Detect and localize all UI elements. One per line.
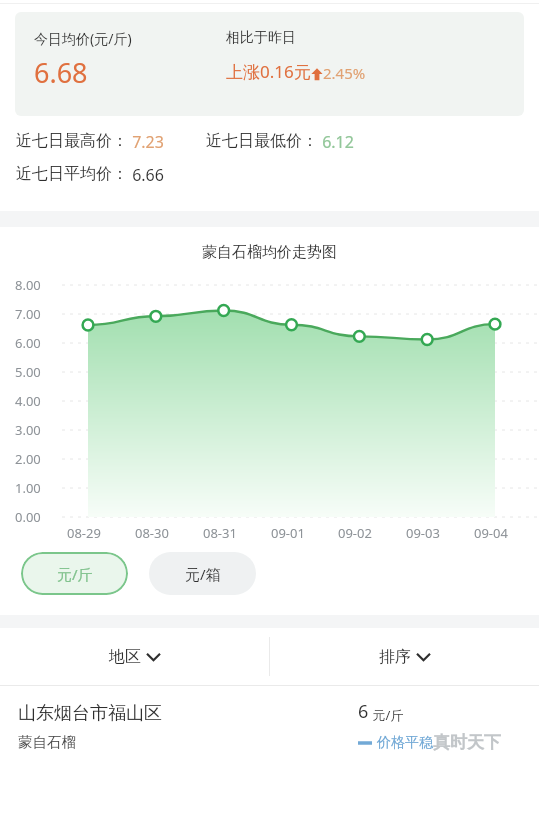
staticText: 元/斤 <box>369 706 404 724</box>
staticText: 今日均价(元/斤) <box>34 29 132 48</box>
staticText: 2.45% <box>323 63 366 83</box>
staticText: 上涨0.16元 <box>226 60 311 83</box>
staticText: 5.00 <box>15 363 41 381</box>
staticText: 3.00 <box>15 421 41 439</box>
button[interactable]: 排序 <box>270 628 539 685</box>
staticText: 元/箱 <box>185 564 221 584</box>
button[interactable]: 今日均价(元/斤) <box>15 12 524 116</box>
staticText: 09-03 <box>406 524 440 542</box>
button[interactable]: 元/箱 <box>149 552 256 595</box>
button[interactable]: 地区 <box>0 628 269 685</box>
staticText: 08-30 <box>135 524 169 542</box>
staticText: 相比于昨日 <box>226 29 296 47</box>
staticText: 6 <box>358 699 369 724</box>
staticText: 近七日平均价： <box>16 164 128 184</box>
staticText: 近七日最高价： <box>16 131 128 151</box>
staticText: 7.23 <box>128 131 164 153</box>
staticText: 7.00 <box>15 305 41 323</box>
staticText: 蒙自石榴 <box>18 733 76 751</box>
staticText: 09-01 <box>271 524 305 542</box>
staticText: 地区 <box>109 647 141 667</box>
button[interactable]: 山东烟台市福山区 <box>0 686 539 766</box>
staticText: 排序 <box>379 647 411 667</box>
staticText: 08-29 <box>67 524 101 542</box>
staticText: 6.12 <box>318 131 354 153</box>
staticText: 1.00 <box>15 479 41 497</box>
staticText: 08-31 <box>203 524 237 542</box>
staticText: 2.00 <box>15 450 41 468</box>
staticText: 6.68 <box>34 54 88 91</box>
staticText: 6.00 <box>15 334 41 352</box>
staticText: 4.00 <box>15 392 41 410</box>
staticText: 09-02 <box>338 524 372 542</box>
staticText: 山东烟台市福山区 <box>18 702 162 725</box>
staticText: 6.66 <box>128 164 164 186</box>
staticText: 近七日最低价： <box>206 131 318 151</box>
button[interactable]: 元/斤 <box>21 552 128 595</box>
staticText: 09-04 <box>474 524 508 542</box>
staticText: 0.00 <box>15 508 41 526</box>
staticText: 真时天下 <box>433 732 501 753</box>
staticText: 8.00 <box>15 276 41 294</box>
staticText: 元/斤 <box>57 564 93 584</box>
staticText: 价格平稳 <box>377 734 433 752</box>
staticText: 蒙自石榴均价走势图 <box>202 243 337 262</box>
